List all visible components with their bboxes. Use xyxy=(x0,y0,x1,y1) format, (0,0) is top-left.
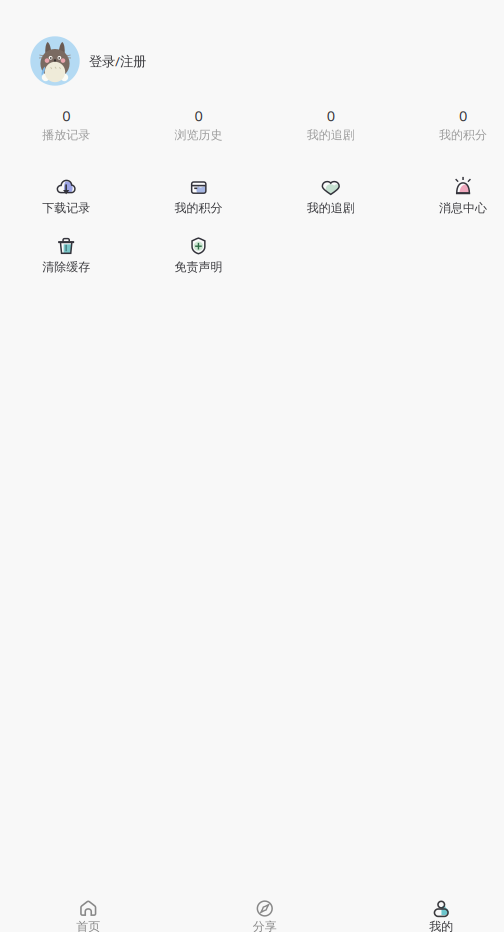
staticText: 首页 xyxy=(76,919,100,932)
button[interactable]: 0 xyxy=(0,105,132,145)
staticText: 分享 xyxy=(253,919,277,932)
staticText: 我的积分 xyxy=(439,128,487,142)
button[interactable]: 0 xyxy=(397,105,504,145)
staticText: 我的 xyxy=(429,919,453,932)
button[interactable]: 免责声明 xyxy=(132,232,265,276)
staticText: 0 xyxy=(62,106,70,125)
button[interactable]: 清除缓存 xyxy=(0,232,132,276)
staticText: 清除缓存 xyxy=(42,260,90,274)
staticText: 免责声明 xyxy=(174,260,222,274)
staticText: 0 xyxy=(327,106,335,125)
staticText: 我的追剧 xyxy=(307,201,355,215)
button[interactable]: 0 xyxy=(132,105,265,145)
staticText: 消息中心 xyxy=(439,201,487,215)
button[interactable]: 分享 xyxy=(176,898,353,932)
staticText: 我的追剧 xyxy=(307,128,355,142)
staticText: 0 xyxy=(194,106,202,125)
staticText: 播放记录 xyxy=(42,128,90,142)
staticText: 登录/注册 xyxy=(89,52,146,70)
button[interactable]: 我的积分 xyxy=(132,173,265,217)
button[interactable]: 我的追剧 xyxy=(265,173,397,217)
button[interactable]: 首页 xyxy=(0,898,176,932)
button[interactable]: 0 xyxy=(265,105,397,145)
staticText: 浏览历史 xyxy=(174,128,222,142)
staticText: 0 xyxy=(459,106,467,125)
button[interactable]: 我的 xyxy=(353,898,504,932)
staticText: 我的积分 xyxy=(174,201,222,215)
staticText: 下载记录 xyxy=(42,201,90,215)
button[interactable]: 登录/注册 xyxy=(30,36,146,86)
button[interactable]: 消息中心 xyxy=(397,173,504,217)
button[interactable]: 下载记录 xyxy=(0,173,132,217)
